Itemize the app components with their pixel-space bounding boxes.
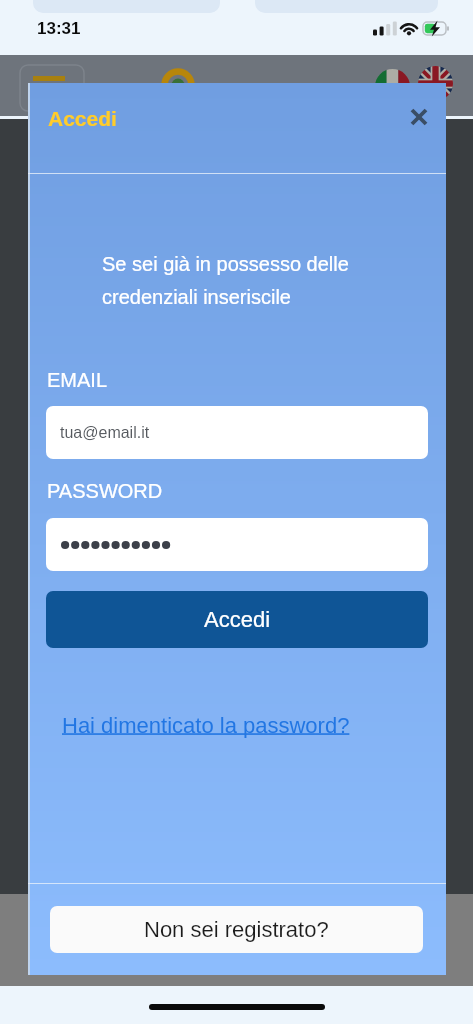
staticText: Non sei registrato? xyxy=(144,917,329,942)
staticText: Hai dimenticato la password? xyxy=(62,713,350,738)
button[interactable]: Accedi xyxy=(46,591,428,648)
button[interactable]: Non sei registrato? xyxy=(50,906,423,953)
staticText: EMAIL xyxy=(47,369,108,391)
staticText: 13:31 xyxy=(37,19,81,38)
staticText: Se sei già in possesso delle credenziali… xyxy=(102,253,349,309)
staticText: PASSWORD xyxy=(47,480,163,502)
staticText: tua@email.it xyxy=(60,424,150,442)
button[interactable]: Hai dimenticato la password? xyxy=(62,713,350,738)
button[interactable] xyxy=(46,518,428,571)
button[interactable]: tua@email.it xyxy=(46,406,428,459)
button[interactable]: Chiudi xyxy=(403,101,435,133)
staticText: Accedi xyxy=(48,107,117,130)
staticText: Accedi xyxy=(204,607,271,632)
